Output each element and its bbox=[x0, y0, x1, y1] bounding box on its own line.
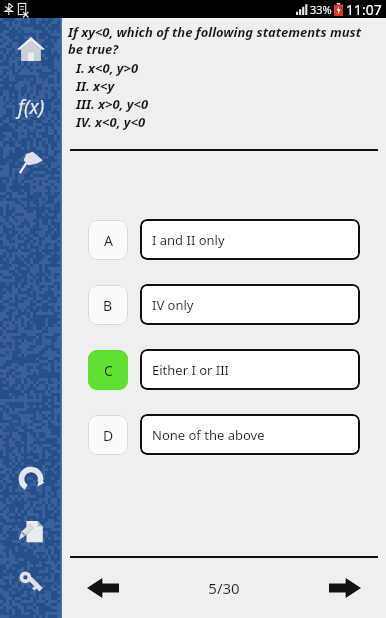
button[interactable]: Answer key bbox=[10, 562, 52, 604]
staticText: 5/30 bbox=[208, 578, 240, 598]
button[interactable]: Previous question bbox=[80, 565, 126, 611]
button[interactable]: Home bbox=[10, 28, 52, 70]
staticText: III. x>0, y<0 bbox=[76, 95, 149, 113]
staticText: D bbox=[103, 426, 114, 445]
staticText: A bbox=[104, 231, 113, 250]
button[interactable]: Either I or III bbox=[140, 349, 360, 390]
button[interactable]: D bbox=[88, 415, 128, 455]
staticText: IV only bbox=[152, 296, 194, 314]
staticText: If xy<0, which of the following statemen… bbox=[68, 23, 378, 58]
staticText: IV. x<0, y<0 bbox=[76, 113, 146, 131]
staticText: None of the above bbox=[152, 426, 265, 444]
button[interactable]: Bookmark bbox=[10, 142, 52, 184]
button[interactable]: Reset bbox=[10, 458, 52, 500]
button[interactable]: Notes bbox=[10, 510, 52, 552]
staticText: I and II only bbox=[152, 231, 225, 249]
button[interactable]: Next question bbox=[322, 565, 368, 611]
staticText: 11:07 bbox=[346, 0, 382, 18]
button[interactable]: B bbox=[88, 285, 128, 325]
staticText: 33% bbox=[310, 2, 332, 17]
staticText: C bbox=[104, 361, 113, 380]
button[interactable]: A bbox=[88, 220, 128, 260]
staticText: B bbox=[103, 296, 113, 315]
staticText: II. x<y bbox=[76, 77, 115, 95]
button[interactable]: IV only bbox=[140, 284, 360, 325]
button[interactable]: C bbox=[88, 350, 128, 390]
button[interactable]: Formulas bbox=[8, 84, 54, 130]
staticText: I. x<0, y>0 bbox=[76, 59, 139, 77]
staticText: Either I or III bbox=[152, 361, 230, 379]
button[interactable]: None of the above bbox=[140, 414, 360, 455]
staticText: f(x) bbox=[18, 94, 45, 120]
button[interactable]: I and II only bbox=[140, 219, 360, 260]
